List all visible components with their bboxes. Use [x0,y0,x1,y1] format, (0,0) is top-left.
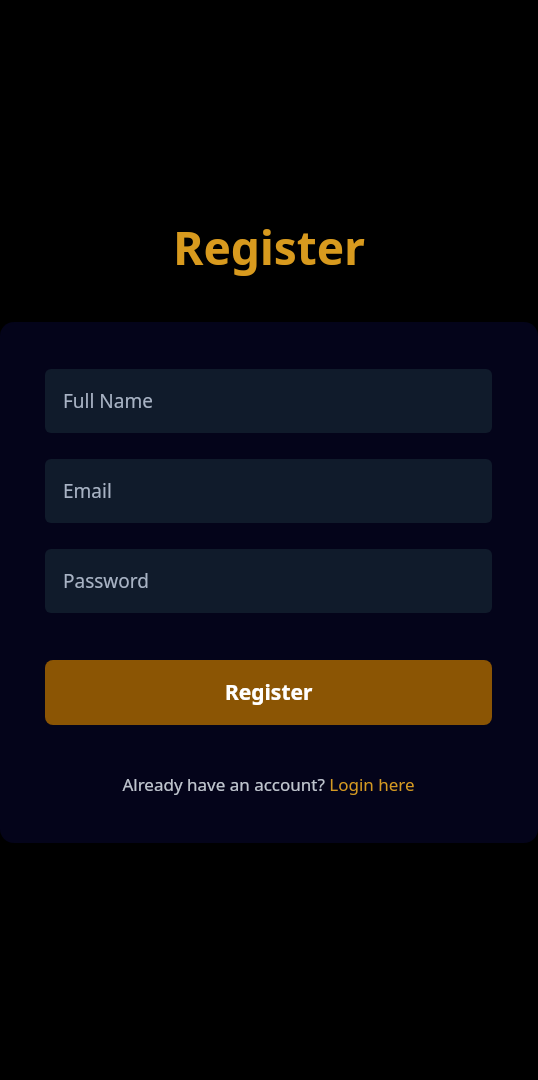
staticText: Email [63,478,112,504]
staticText: Password [63,568,149,594]
button[interactable]: Login here [122,773,415,796]
staticText: Register [173,216,365,279]
staticText: Already have an account? Login here [122,773,415,796]
button[interactable]: Email [45,459,492,523]
button[interactable]: Full Name [45,369,492,433]
button[interactable]: Register [45,660,492,725]
staticText: Register [225,678,313,707]
button[interactable]: Password [45,549,492,613]
staticText: Full Name [63,388,153,414]
